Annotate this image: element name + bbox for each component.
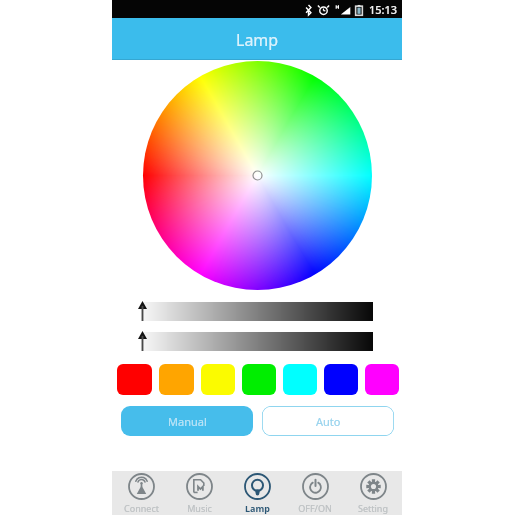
staticText: Auto bbox=[316, 414, 341, 429]
button[interactable]: Red bbox=[117, 364, 152, 395]
staticText: Setting bbox=[358, 502, 388, 514]
staticText: Music bbox=[187, 502, 212, 514]
button[interactable]: Yellow bbox=[201, 364, 235, 395]
button[interactable]: Saturation bbox=[144, 332, 373, 351]
button[interactable]: Auto bbox=[262, 406, 394, 436]
button[interactable]: Magenta bbox=[365, 364, 399, 395]
button[interactable]: Green bbox=[242, 364, 276, 395]
button[interactable]: Music bbox=[170, 471, 228, 515]
button[interactable]: Cyan bbox=[283, 364, 317, 395]
staticText: Manual bbox=[168, 414, 207, 429]
button[interactable]: Orange bbox=[159, 364, 194, 395]
button[interactable]: OFF/ON bbox=[286, 471, 344, 515]
button[interactable]: Brightness bbox=[144, 302, 373, 321]
staticText: OFF/ON bbox=[298, 502, 332, 514]
button[interactable]: Setting bbox=[344, 471, 402, 515]
staticText: Lamp bbox=[245, 502, 270, 514]
staticText: 15:13 bbox=[369, 2, 398, 17]
button[interactable]: Manual bbox=[121, 406, 253, 436]
staticText: Connect bbox=[124, 502, 159, 514]
staticText: Lamp bbox=[236, 29, 279, 51]
button[interactable]: Connect bbox=[112, 471, 170, 515]
button[interactable]: Lamp bbox=[228, 471, 286, 515]
button[interactable]: Blue bbox=[324, 364, 358, 395]
